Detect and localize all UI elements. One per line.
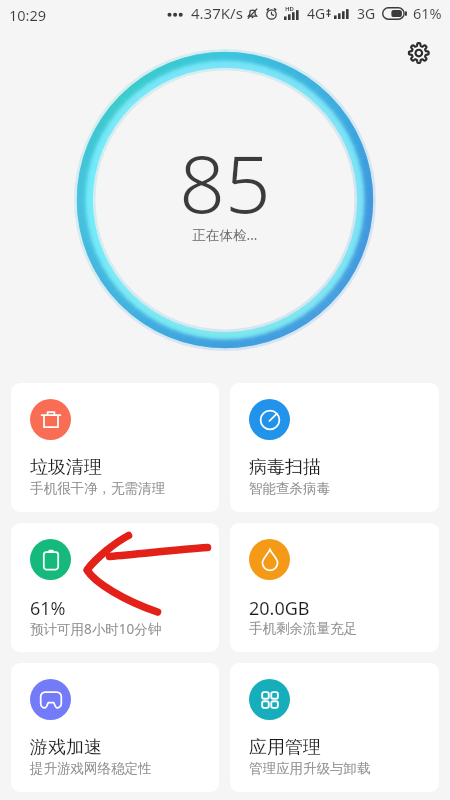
staticText: 4.37K/s: [191, 3, 243, 23]
button[interactable]: 应用管理: [230, 663, 439, 792]
staticText: 手机很干净，无需清理: [30, 480, 165, 497]
staticText: 应用管理: [249, 736, 321, 759]
staticText: 61%: [30, 596, 66, 621]
staticText: 垃圾清理: [30, 456, 102, 479]
button[interactable]: Settings: [398, 33, 438, 73]
button[interactable]: 20.0GB: [230, 523, 439, 652]
staticText: 智能查杀病毒: [249, 480, 330, 497]
staticText: 管理应用升级与卸载: [249, 760, 371, 777]
staticText: 4G: [307, 4, 326, 23]
button[interactable]: 病毒扫描: [230, 383, 439, 512]
staticText: 游戏加速: [30, 736, 102, 759]
staticText: 预计可用8小时10分钟: [30, 620, 162, 638]
button[interactable]: 游戏加速: [11, 663, 219, 792]
staticText: 正在体检...: [0, 226, 450, 244]
staticText: 85: [0, 127, 450, 236]
staticText: 10:29: [9, 5, 47, 25]
staticText: 提升游戏网络稳定性: [30, 760, 152, 777]
staticText: 20.0GB: [249, 596, 310, 621]
staticText: 3G: [357, 4, 376, 23]
button[interactable]: 垃圾清理: [11, 383, 219, 512]
staticText: HD: [285, 5, 294, 13]
staticText: 手机剩余流量充足: [249, 620, 357, 637]
staticText: 病毒扫描: [249, 456, 321, 479]
staticText: 61%: [413, 3, 442, 23]
button[interactable]: 61%: [11, 523, 219, 652]
